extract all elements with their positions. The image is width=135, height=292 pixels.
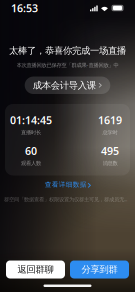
staticText: 返回群聊 — [17, 264, 53, 275]
staticText: 60 — [25, 144, 37, 158]
staticText: 观看人数 — [21, 160, 41, 166]
staticText: 495 — [101, 144, 119, 158]
staticText: 太棒了，恭喜你完成一场直播 — [9, 45, 126, 56]
staticText: 01:14:45 — [10, 113, 52, 127]
staticText: 1619 — [98, 113, 122, 127]
staticText: 本次直播回放已保存至「群成果-直播回放」中 — [16, 61, 118, 69]
button[interactable]: 成本会计导入课 — [25, 76, 110, 94]
staticText: 16:53 — [11, 1, 38, 15]
staticText: 直播时长 — [21, 129, 41, 136]
staticText: 群空间「数据查看」权限设置为仅群主可见，群成员无法查看 — [4, 196, 131, 203]
staticText: 成本会计导入课 — [33, 79, 96, 91]
staticText: 查看详细数据 — [45, 180, 87, 189]
button[interactable]: 分享到群 — [70, 260, 129, 278]
staticText: 总学时 — [102, 129, 117, 136]
staticText: 分享到群 — [81, 264, 117, 275]
button[interactable]: 查看详细数据 — [42, 177, 93, 192]
staticText: 消息数 — [102, 160, 117, 166]
button[interactable]: 返回群聊 — [6, 260, 65, 278]
